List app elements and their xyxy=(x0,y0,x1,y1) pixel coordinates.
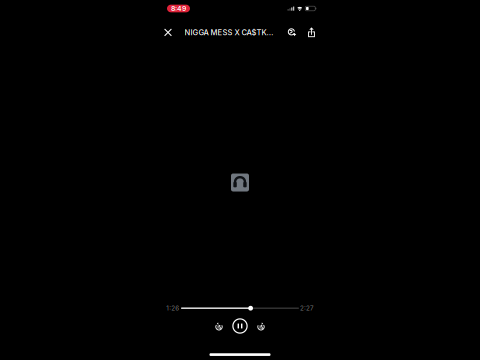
button[interactable]: Shazam xyxy=(284,24,300,40)
button[interactable]: Skip forward 15 seconds xyxy=(254,319,268,333)
button[interactable]: Close xyxy=(159,24,176,41)
staticText: NIGGA MESS X CA$TK… xyxy=(184,28,273,37)
button[interactable]: Skip back 15 seconds xyxy=(212,319,226,333)
staticText: 1:26 xyxy=(166,304,179,312)
staticText: 8:49 xyxy=(171,4,186,13)
staticText: 2:27 xyxy=(300,304,314,312)
button[interactable]: Pause xyxy=(230,316,249,335)
button[interactable]: Share xyxy=(303,24,319,40)
